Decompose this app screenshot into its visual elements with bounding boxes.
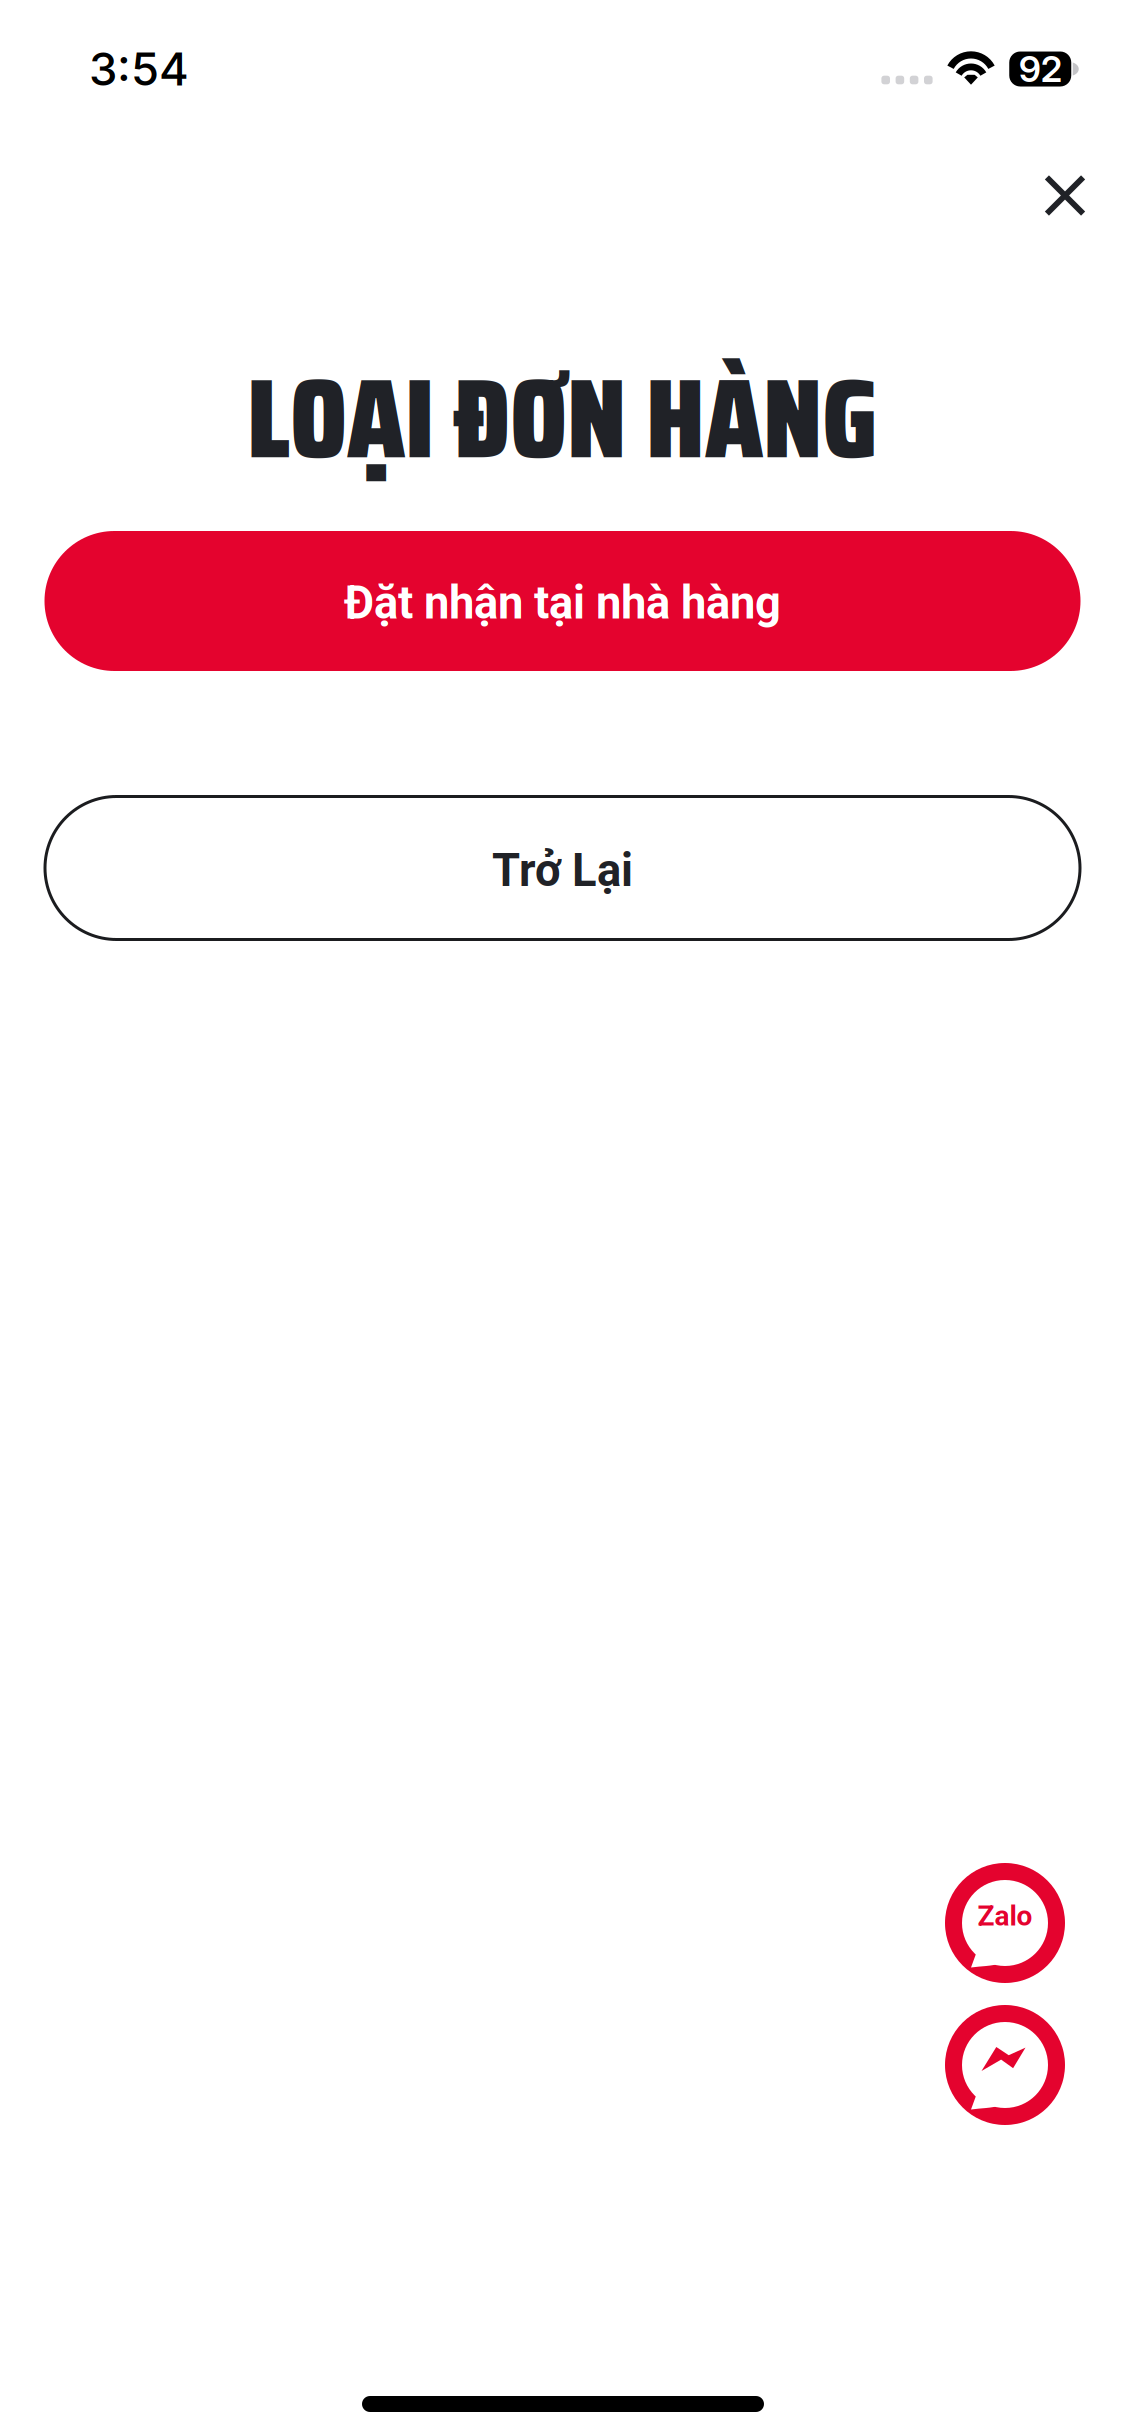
staticText: Zalo — [977, 1900, 1032, 1932]
staticText: Trở Lại — [492, 844, 633, 897]
staticText: 3:54 — [89, 42, 189, 96]
staticText: Đặt nhận tại nhà hàng — [344, 576, 781, 629]
button[interactable]: Chat on Messenger — [945, 2005, 1065, 2125]
staticText: 92 — [1019, 47, 1062, 91]
button[interactable]: Trở Lại — [45, 796, 1080, 939]
button[interactable]: Đặt nhận tại nhà hàng — [44, 531, 1080, 671]
staticText: LOẠI ĐƠN HÀNG — [247, 329, 878, 507]
button[interactable]: Chat on Zalo — [945, 1863, 1065, 1983]
button[interactable]: Close — [1017, 147, 1113, 243]
